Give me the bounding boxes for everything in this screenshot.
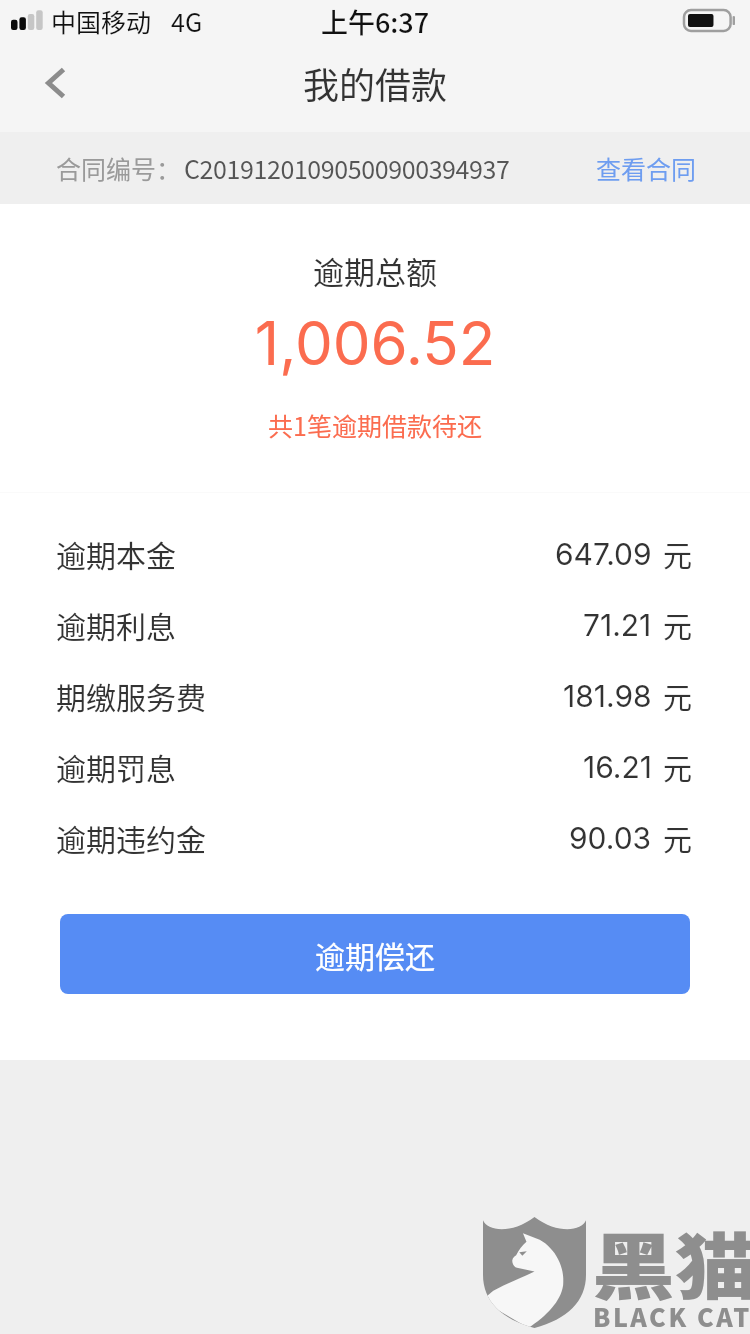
staticText: BLACK CAT [593, 1298, 750, 1334]
staticText: 上午6:37 [0, 2, 750, 41]
staticText: 逾期利息 [56, 603, 176, 646]
staticText: C20191201090500900394937 [184, 150, 510, 186]
staticText: 合同编号： [56, 150, 182, 186]
staticText: 元 [663, 817, 693, 859]
staticText: 中国移动 [51, 3, 152, 39]
staticText: 黑猫 [592, 1210, 750, 1313]
staticText: 647.09 [555, 536, 652, 572]
staticText: 71.21 [583, 607, 652, 643]
staticText: 逾期违约金 [56, 816, 206, 859]
staticText: 元 [663, 746, 693, 788]
button[interactable]: Back [0, 44, 108, 132]
button[interactable]: 查看合同 [584, 140, 709, 196]
staticText: 16.21 [583, 749, 652, 785]
staticText: 逾期总额 [0, 248, 750, 293]
staticText: 共1笔逾期借款待还 [0, 407, 750, 443]
button[interactable]: 逾期偿还 [60, 914, 690, 994]
staticText: 1,006.52 [0, 307, 750, 380]
staticText: 90.03 [569, 820, 652, 856]
staticText: 元 [663, 675, 693, 717]
staticText: 逾期罚息 [56, 745, 176, 788]
staticText: 元 [663, 533, 693, 575]
staticText: 查看合同 [596, 150, 697, 186]
staticText: 4G [171, 3, 203, 39]
staticText: 元 [663, 604, 693, 646]
staticText: 我的借款 [303, 57, 448, 109]
staticText: 期缴服务费 [56, 674, 206, 717]
staticText: 逾期偿还 [315, 933, 435, 976]
staticText: 逾期本金 [56, 532, 176, 575]
staticText: 181.98 [563, 678, 652, 714]
